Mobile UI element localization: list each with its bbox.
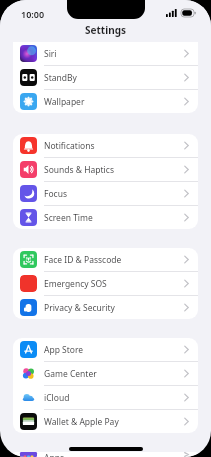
staticText: Emergency SOS xyxy=(44,278,184,290)
staticText: Focus xyxy=(44,188,184,200)
staticText: Apps xyxy=(44,452,184,457)
button[interactable]: Focus xyxy=(13,182,198,205)
staticText: Wallet & Apple Pay xyxy=(44,416,184,428)
button[interactable]: App Store xyxy=(13,338,198,361)
button[interactable]: Wallet & Apple Pay xyxy=(13,410,198,433)
staticText: 10:00 xyxy=(21,8,45,20)
staticText: Settings xyxy=(85,23,126,37)
staticText: Screen Time xyxy=(44,212,184,224)
button[interactable]: Screen Time xyxy=(13,206,198,229)
button[interactable]: Sounds & Haptics xyxy=(13,158,198,181)
staticText: Sounds & Haptics xyxy=(44,164,184,176)
button[interactable]: Wallpaper xyxy=(13,90,198,113)
staticText: Notifications xyxy=(44,140,184,152)
staticText: App Store xyxy=(44,344,184,356)
staticText: Siri xyxy=(44,48,184,60)
staticText: Wallpaper xyxy=(44,96,184,108)
button[interactable]: Notifications xyxy=(13,134,198,157)
button[interactable]: Siri xyxy=(13,42,198,65)
staticText: StandBy xyxy=(44,72,184,84)
staticText: Privacy & Security xyxy=(44,302,184,314)
button[interactable]: Game Center xyxy=(13,362,198,385)
button[interactable]: Face ID & Passcode xyxy=(13,248,198,271)
staticText: iCloud xyxy=(44,392,184,404)
button[interactable]: iCloud xyxy=(13,386,198,409)
button[interactable]: Apps xyxy=(13,452,198,457)
button[interactable]: Privacy & Security xyxy=(13,296,198,319)
button[interactable]: Emergency SOS xyxy=(13,272,198,295)
staticText: Game Center xyxy=(44,368,184,380)
button[interactable]: StandBy xyxy=(13,66,198,89)
staticText: Face ID & Passcode xyxy=(44,254,184,266)
